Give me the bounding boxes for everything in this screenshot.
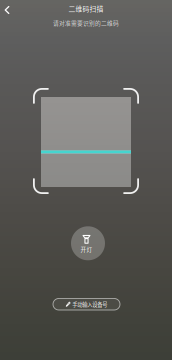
staticText: 请对准需要识别的二维码 (53, 19, 119, 27)
staticText: 开灯 (80, 245, 92, 253)
staticText: 二维码扫描 (68, 4, 103, 13)
button[interactable]: Back (0, 3, 14, 17)
button[interactable]: 开灯 (71, 226, 105, 260)
button[interactable]: 手动输入设备号 (53, 298, 120, 310)
staticText: 手动输入设备号 (72, 300, 107, 308)
